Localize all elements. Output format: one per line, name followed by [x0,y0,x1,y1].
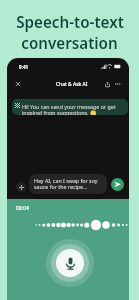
button[interactable]: Close [13,79,23,89]
staticText: Speech-to-text [16,12,124,33]
staticText: Hey AI, can I swap for soy sauce for the… [34,177,103,191]
staticText: Chat & Ask AI [56,81,88,88]
button[interactable]: Chat & Ask AI [52,79,92,89]
button[interactable]: Microphone [56,249,84,277]
staticText: 00:04 [16,205,29,212]
button[interactable]: More options [112,79,122,89]
button[interactable]: Share [102,79,112,89]
staticText: conversation [21,33,118,54]
button[interactable]: Add attachment [16,182,26,192]
button[interactable]: Hey AI, can I swap for soy sauce for the… [29,174,107,194]
staticText: 9:41 [19,64,29,70]
staticText: Hi! You can send your message or get ins… [22,103,125,115]
button[interactable]: Send [111,178,124,191]
